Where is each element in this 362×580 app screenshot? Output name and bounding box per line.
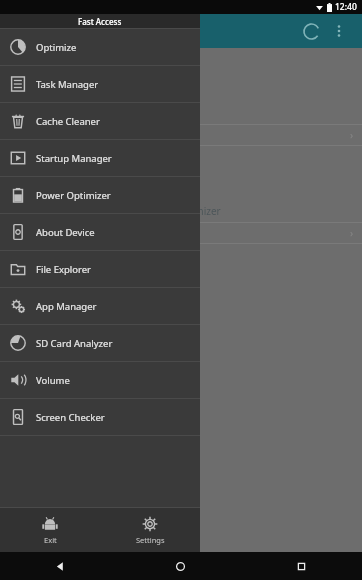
button[interactable]: Volume [0, 362, 200, 398]
button[interactable]: Task Manager [0, 66, 200, 102]
staticText: Task Manager [36, 78, 99, 91]
staticText: Settings [136, 535, 165, 545]
button[interactable]: More options [326, 18, 352, 44]
staticText: Volume [36, 374, 70, 387]
button[interactable]: Screen Checker [0, 399, 200, 435]
staticText: File Explorer [36, 263, 92, 276]
staticText: Exit [44, 535, 57, 545]
button[interactable]: App Manager [0, 288, 200, 324]
staticText: Cache Size： 6.06MB [8, 129, 94, 141]
staticText: Startup Manager [36, 152, 112, 165]
staticText: Screen Checker [36, 411, 105, 424]
staticText: › [350, 226, 354, 240]
button[interactable]: Home [120, 552, 241, 580]
button[interactable]: About Device [0, 214, 200, 250]
button[interactable]: Startup Manager [0, 140, 200, 176]
button[interactable]: Recents [241, 552, 362, 580]
button[interactable]: Cache Size： 6.06MB [0, 124, 362, 146]
staticText: Can be optimized： 2 item(s) [8, 227, 125, 239]
button[interactable]: Refresh [298, 18, 324, 44]
staticText: Fast Access [78, 16, 122, 27]
button[interactable]: Back [0, 552, 120, 580]
staticText: 12:40 [335, 1, 357, 13]
button[interactable]: Optimize [0, 29, 200, 65]
staticText: About Device [36, 226, 95, 239]
button[interactable]: Power Optimizer [0, 177, 200, 213]
staticText: Optimize [36, 41, 77, 54]
staticText: › [350, 128, 354, 142]
button[interactable]: SD Card Analyzer [0, 325, 200, 361]
staticText: Cache Cleaner [36, 115, 100, 128]
button[interactable]: Exit [0, 508, 100, 552]
button[interactable]: Can be optimized： 2 item(s) [0, 222, 362, 244]
staticText: Power Optimizer [142, 204, 221, 218]
staticText: SD Card Analyzer [36, 337, 113, 350]
button[interactable]: File Explorer [0, 251, 200, 287]
button[interactable]: Cache Cleaner [0, 103, 200, 139]
button[interactable]: Settings [100, 508, 200, 552]
button[interactable]: Clean [0, 60, 362, 118]
staticText: App Manager [36, 300, 97, 313]
staticText: Power Optimizer [36, 189, 111, 202]
button[interactable]: Power Optimizer [0, 160, 362, 218]
